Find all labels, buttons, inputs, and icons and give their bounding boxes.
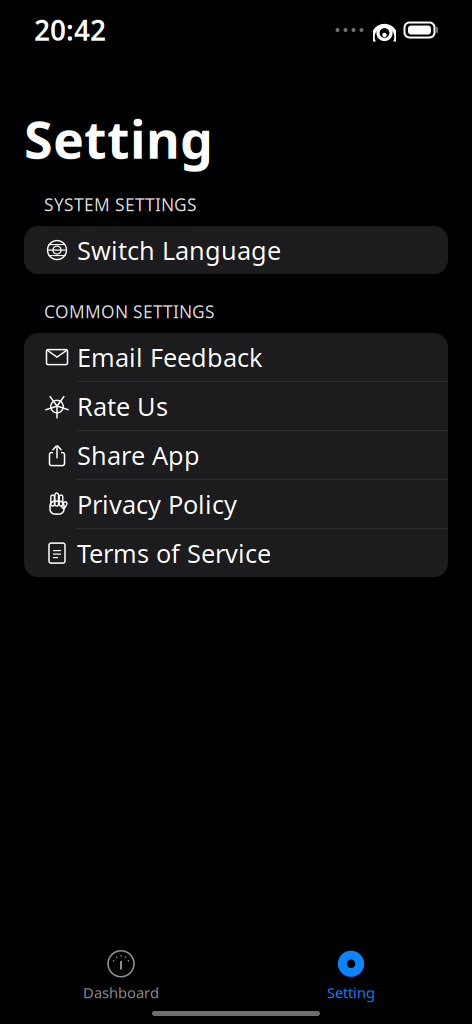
staticText: SYSTEM SETTINGS [44,193,197,216]
button[interactable]: Privacy Policy [24,480,448,528]
staticText: Dashboard [83,983,159,1002]
button[interactable]: Terms of Service [24,529,448,577]
staticText: Terms of Service [77,536,271,570]
button[interactable]: Setting [236,947,466,1005]
staticText: Share App [77,438,200,472]
button[interactable]: Dashboard [6,947,236,1005]
staticText: COMMON SETTINGS [44,300,215,323]
staticText: Setting [24,104,213,173]
staticText: 20:42 [34,11,106,49]
button[interactable]: Email Feedback [24,333,448,381]
staticText: Setting [327,983,375,1002]
staticText: Rate Us [77,389,168,423]
button[interactable]: Rate Us [24,382,448,430]
staticText: Email Feedback [77,340,263,374]
staticText: Privacy Policy [77,487,237,521]
button[interactable]: Switch Language [24,226,448,274]
staticText: Switch Language [77,233,281,267]
button[interactable]: Share App [24,431,448,479]
